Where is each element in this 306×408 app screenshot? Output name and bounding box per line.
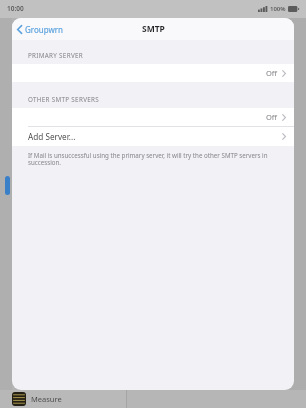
button[interactable]: Off bbox=[12, 64, 294, 82]
staticText: Off bbox=[266, 112, 278, 122]
staticText: Measure bbox=[31, 394, 62, 404]
staticText: Groupwrn bbox=[25, 24, 64, 35]
staticText: OTHER SMTP SERVERS bbox=[28, 95, 99, 104]
button[interactable]: Measure bbox=[12, 392, 62, 406]
staticText: Off bbox=[266, 68, 278, 78]
button[interactable]: Groupwrn bbox=[12, 21, 70, 38]
staticText: If Mail is unsuccessful using the primar… bbox=[28, 151, 280, 167]
staticText: 100% bbox=[270, 5, 286, 13]
staticText: 10:00 bbox=[7, 4, 24, 13]
button[interactable]: Off bbox=[12, 108, 294, 126]
staticText: Add Server... bbox=[28, 131, 76, 142]
button[interactable]: Sidebar tab bbox=[5, 176, 10, 195]
staticText: SMTP bbox=[142, 23, 165, 35]
button[interactable]: Add Server... bbox=[12, 127, 294, 146]
staticText: PRIMARY SERVER bbox=[28, 51, 83, 60]
